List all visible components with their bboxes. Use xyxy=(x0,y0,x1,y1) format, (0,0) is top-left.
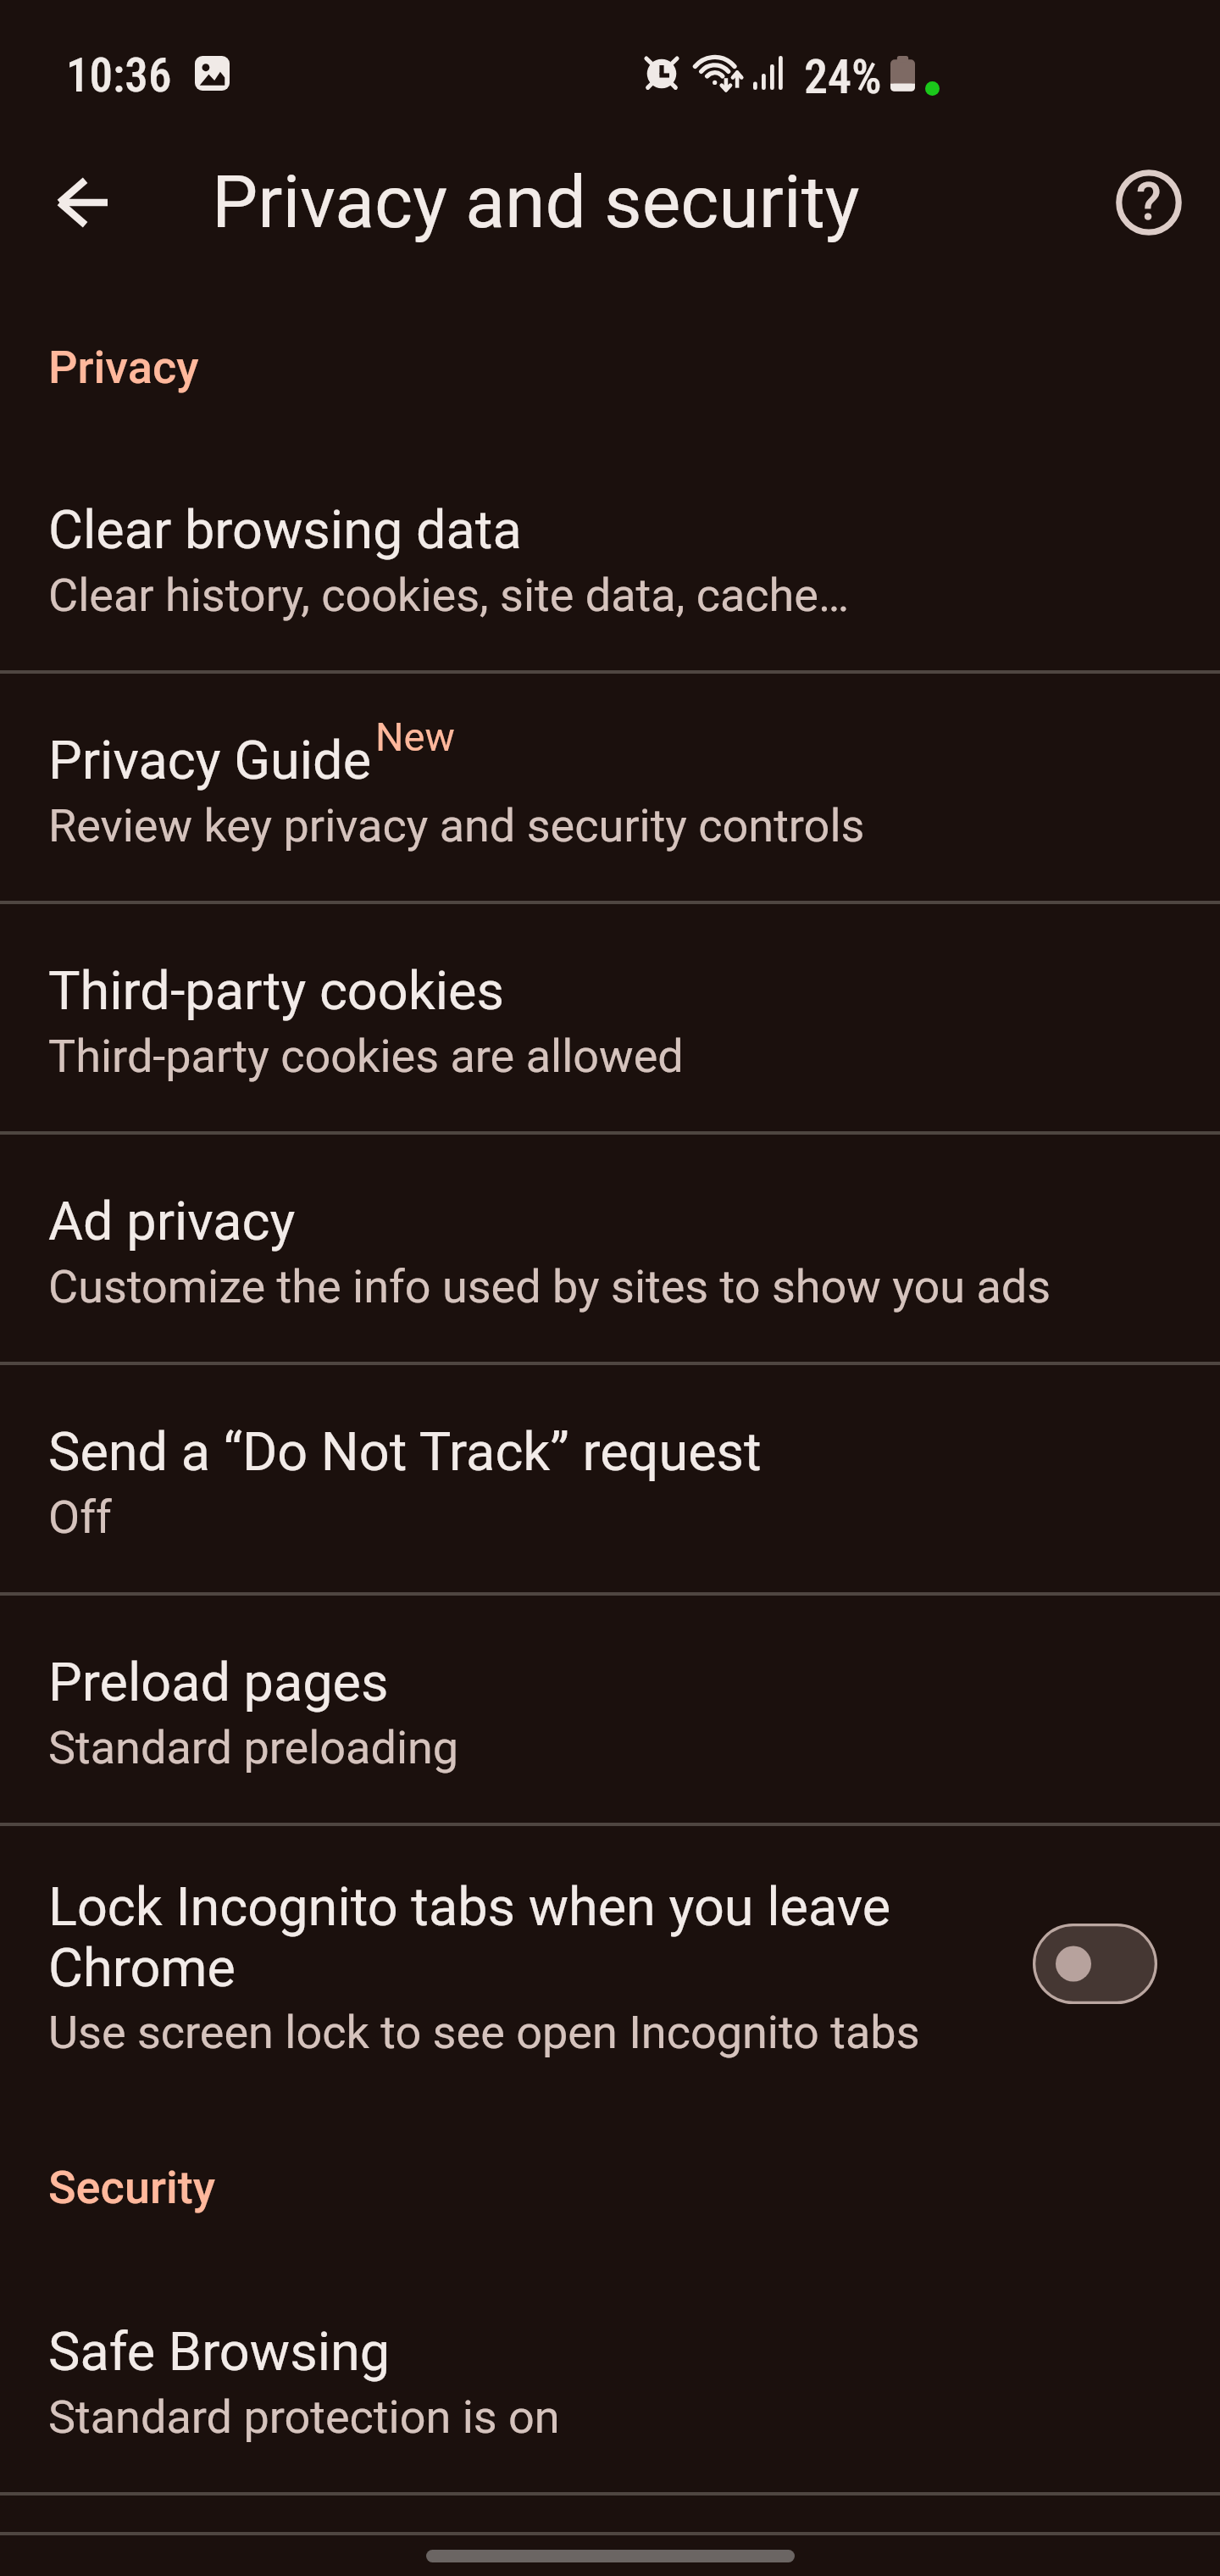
staticText: Lock Incognito tabs when you leave Chrom… xyxy=(48,1876,974,1999)
button[interactable]: Back xyxy=(36,155,130,250)
button[interactable]: Lock Incognito tabs when you leave Chrom… xyxy=(0,1826,1220,2101)
staticText: Standard preloading xyxy=(48,1721,459,1774)
button[interactable]: Third-party cookies xyxy=(0,904,1220,1131)
staticText: ? xyxy=(1136,171,1162,231)
staticText: Off xyxy=(48,1491,112,1544)
button[interactable]: Help xyxy=(1101,155,1196,250)
staticText: Third-party cookies are allowed xyxy=(48,1030,684,1083)
staticText: Security xyxy=(48,2161,215,2214)
staticText: Clear browsing data xyxy=(48,499,522,562)
staticText: Safe Browsing xyxy=(48,2321,391,2384)
staticText: Clear history, cookies, site data, cache… xyxy=(48,569,850,622)
staticText: Use screen lock to see open Incognito ta… xyxy=(48,2006,920,2059)
staticText: Review key privacy and security controls xyxy=(48,799,865,852)
staticText: Privacy Guide xyxy=(48,730,372,792)
button[interactable]: Send a “Do Not Track” request xyxy=(0,1365,1220,1592)
button[interactable]: Privacy Guide xyxy=(0,674,1220,901)
staticText: Third-party cookies xyxy=(48,960,504,1023)
staticText: 24% xyxy=(804,49,882,105)
button[interactable]: Clear browsing data xyxy=(0,443,1220,670)
staticText: New xyxy=(375,713,455,760)
button[interactable]: Safe Browsing xyxy=(0,2265,1220,2492)
button[interactable]: Lock Incognito tabs toggle xyxy=(1033,1924,1157,2004)
staticText: Privacy and security xyxy=(212,159,860,245)
staticText: Privacy xyxy=(48,341,199,394)
button[interactable]: Preload pages xyxy=(0,1596,1220,1823)
staticText: Send a “Do Not Track” request xyxy=(48,1421,762,1484)
staticText: Ad privacy xyxy=(48,1191,296,1253)
staticText: Preload pages xyxy=(48,1652,389,1714)
staticText: Customize the info used by sites to show… xyxy=(48,1260,1051,1313)
staticText: 10:36 xyxy=(66,48,172,103)
staticText: Standard protection is on xyxy=(48,2390,560,2444)
button[interactable]: Ad privacy xyxy=(0,1135,1220,1362)
